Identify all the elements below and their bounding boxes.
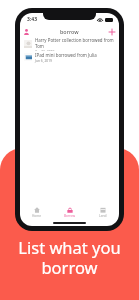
staticText: Tom	[35, 43, 44, 49]
staticText: 3:43	[27, 16, 37, 23]
button[interactable]: Borrow	[53, 207, 86, 218]
staticText: Jun 6, 2019	[35, 58, 53, 62]
staticText: Home	[32, 214, 42, 218]
button[interactable]: Profile	[21, 27, 31, 37]
button[interactable]: Lend	[86, 207, 119, 218]
staticText: List what you borrow	[0, 236, 139, 279]
staticText: Apr 26, 2019	[35, 49, 55, 51]
button[interactable]: IPad mini borrowed from Julia	[20, 51, 119, 63]
button[interactable]: Home	[20, 207, 53, 218]
button[interactable]: Harry Potter collection borrowed from	[20, 37, 119, 51]
staticText: IPad mini borrowed from Julia	[35, 52, 97, 58]
staticText: Harry Potter collection borrowed from	[35, 37, 114, 43]
staticText: borrow	[60, 28, 79, 35]
staticText: Lend	[99, 214, 107, 218]
staticText: Borrow	[64, 214, 75, 218]
button[interactable]: Add	[107, 27, 117, 37]
